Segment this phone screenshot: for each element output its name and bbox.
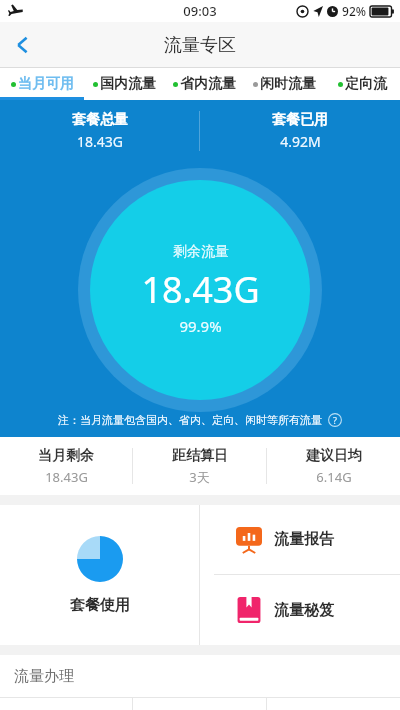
button[interactable]: 省内流量 [164,68,244,100]
staticText: 注：当月流量包含国内、省内、定向、闲时等所有流量 [58,413,322,427]
staticText: 国内流量 [100,75,156,93]
staticText: 流量报告 [274,530,334,549]
button[interactable]: 当月剩余 [0,447,132,486]
staticText: 流量秘笈 [274,601,334,620]
staticText: 建议日均 [306,447,362,465]
staticText: 闲时流量 [260,75,316,93]
staticText: 套餐总量 [72,111,128,129]
staticText: 18.43G [45,468,88,486]
other: Help [328,413,342,427]
staticText: 92% [342,3,366,19]
staticText: 定向流 [345,75,387,93]
button[interactable]: 闲时流量 [244,68,324,100]
staticText: 距结算日 [172,447,228,465]
staticText: 当月可用 [18,75,74,93]
staticText: 流量专区 [164,34,236,57]
button[interactable]: 流量秘笈 [200,575,400,645]
button[interactable]: Back [0,22,46,68]
staticText: ? [333,414,337,426]
staticText: 剩余流量 [173,243,229,261]
button[interactable]: 套餐总量 [0,111,199,151]
staticText: 99.9% [179,316,222,336]
staticText: 6.14G [316,468,352,486]
staticText: 18.43G [77,132,123,151]
button[interactable]: 国内流量 [84,68,164,100]
button[interactable]: 定向流 [324,68,400,100]
staticText: 当月剩余 [38,447,94,465]
staticText: 18.43G [141,265,260,314]
staticText: 3天 [189,468,210,486]
button[interactable]: 套餐使用 [0,505,199,645]
staticText: 套餐使用 [70,596,130,615]
staticText: 套餐已用 [272,111,328,129]
staticText: 4.92M [280,132,321,151]
staticText: 09:03 [183,2,217,20]
staticText: 省内流量 [180,75,236,93]
button[interactable]: 套餐已用 [200,111,400,151]
button[interactable]: 距结算日 [133,447,266,486]
button[interactable]: 建议日均 [267,447,400,486]
button[interactable]: 注：当月流量包含国内、省内、定向、闲时等所有流量 [0,403,400,437]
button[interactable]: 当月可用 [0,68,84,100]
staticText: 流量办理 [14,667,74,686]
button[interactable]: 流量报告 [200,505,400,574]
